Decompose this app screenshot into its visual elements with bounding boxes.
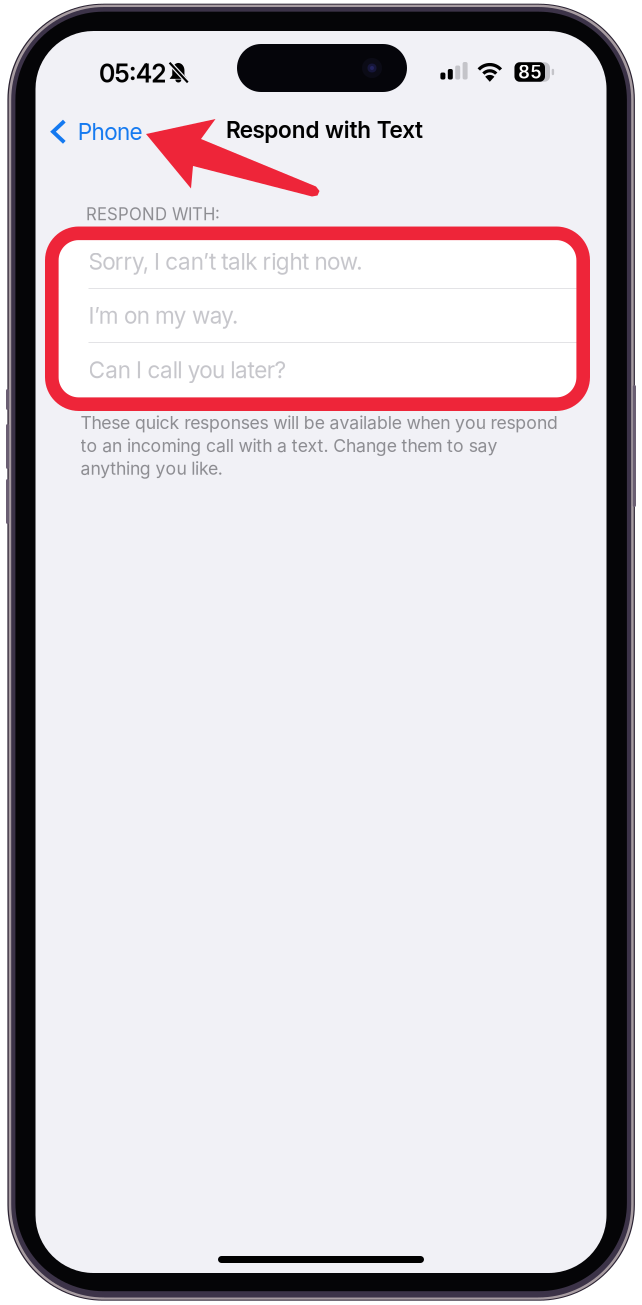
staticText: These quick responses will be available … bbox=[80, 412, 558, 479]
staticText: I’m on my way. bbox=[88, 302, 238, 329]
button[interactable]: Can I call you later? bbox=[58, 343, 577, 397]
staticText: Sorry, I can’t talk right now. bbox=[88, 248, 362, 275]
staticText: Phone bbox=[78, 118, 143, 145]
staticText: Can I call you later? bbox=[88, 356, 286, 384]
button[interactable]: I’m on my way. bbox=[58, 289, 577, 343]
staticText: RESPOND WITH: bbox=[86, 204, 220, 224]
button[interactable]: Phone bbox=[35, 109, 153, 154]
staticText: 85 bbox=[518, 61, 541, 83]
staticText: 05:42 bbox=[99, 58, 166, 88]
button[interactable]: Sorry, I can’t talk right now. bbox=[58, 235, 577, 289]
staticText: Respond with Text bbox=[226, 116, 423, 143]
